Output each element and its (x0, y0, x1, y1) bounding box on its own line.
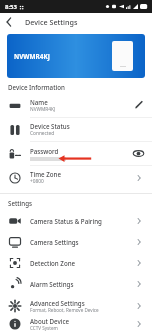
button[interactable]: Name (0, 94, 152, 117)
staticText: Password (30, 147, 59, 155)
button[interactable]: About Device (0, 317, 152, 331)
button[interactable]: NVWMR4KJ (7, 34, 145, 78)
staticText: About Device (30, 317, 69, 325)
button[interactable]: Camera Status & Pairing (0, 210, 152, 231)
staticText: 8:53 (5, 3, 17, 11)
other: Show password (133, 148, 144, 159)
staticText: Connected (30, 130, 55, 137)
button[interactable]: Password (0, 142, 152, 165)
staticText: NVWMR4KJ (30, 106, 56, 113)
other: Edit name (133, 100, 144, 111)
staticText: Device Status (30, 122, 70, 130)
staticText: CCTV System (30, 325, 58, 331)
button[interactable]: Camera Settings (0, 231, 152, 252)
staticText: +0800 (30, 178, 44, 185)
staticText: Detection Zone (30, 259, 76, 267)
button[interactable]: Advanced Settings (0, 294, 152, 317)
staticText: Format, Reboot, Remove Device (30, 307, 99, 313)
button[interactable]: Time Zone (0, 166, 152, 189)
staticText: Device Information (8, 83, 65, 91)
staticText: Alarm Settings (30, 280, 74, 288)
staticText: Camera Status & Pairing (30, 217, 102, 225)
button[interactable]: Alarm Settings (0, 273, 152, 294)
staticText: Settings (8, 199, 33, 207)
staticText: Name (30, 98, 48, 106)
staticText: NVWMR4KJ (14, 52, 50, 61)
staticText: Time Zone (30, 170, 61, 178)
button[interactable]: Detection Zone (0, 252, 152, 273)
staticText: Device Settings (25, 17, 78, 27)
button[interactable]: Device Status (0, 118, 152, 141)
staticText: Advanced Settings (30, 299, 85, 307)
staticText: Camera Settings (30, 238, 79, 246)
button[interactable]: Back (0, 13, 17, 30)
